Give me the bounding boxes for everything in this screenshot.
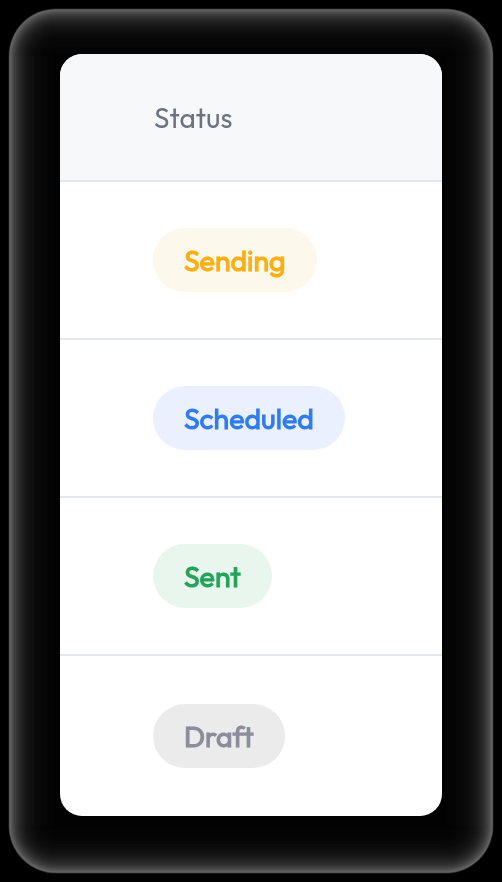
button[interactable]: Scheduled xyxy=(153,386,345,450)
button[interactable]: Sending xyxy=(60,182,442,338)
staticText: Status xyxy=(154,100,233,135)
staticText: Sending xyxy=(184,242,286,278)
button[interactable]: Sent xyxy=(153,544,272,608)
staticText: Draft xyxy=(184,718,254,754)
staticText: Scheduled xyxy=(184,400,314,436)
button[interactable]: Draft xyxy=(153,704,285,768)
button[interactable]: Sending xyxy=(153,228,317,292)
button[interactable]: Scheduled xyxy=(60,340,442,496)
button[interactable]: Sent xyxy=(60,498,442,654)
button[interactable]: Draft xyxy=(60,656,442,816)
staticText: Sent xyxy=(184,558,241,594)
